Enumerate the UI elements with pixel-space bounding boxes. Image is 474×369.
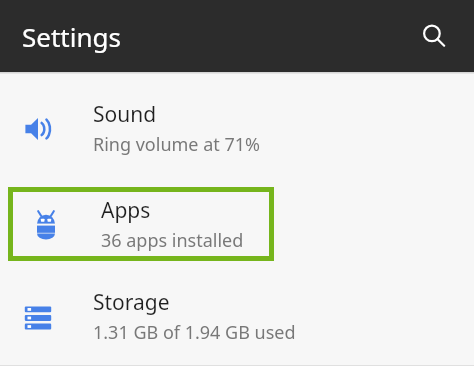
staticText: Sound [93, 100, 157, 129]
staticText: 1.31 GB of 1.94 GB used [93, 320, 296, 345]
staticText: 36 apps installed [101, 228, 244, 253]
staticText: Storage [93, 288, 170, 317]
button[interactable]: Apps [8, 187, 274, 261]
button[interactable]: Storage [0, 279, 474, 353]
button[interactable]: Search [412, 14, 456, 58]
staticText: Apps [101, 196, 151, 225]
staticText: Ring volume at 71% [93, 132, 261, 157]
button[interactable]: Sound [0, 91, 474, 165]
staticText: Settings [22, 19, 121, 54]
